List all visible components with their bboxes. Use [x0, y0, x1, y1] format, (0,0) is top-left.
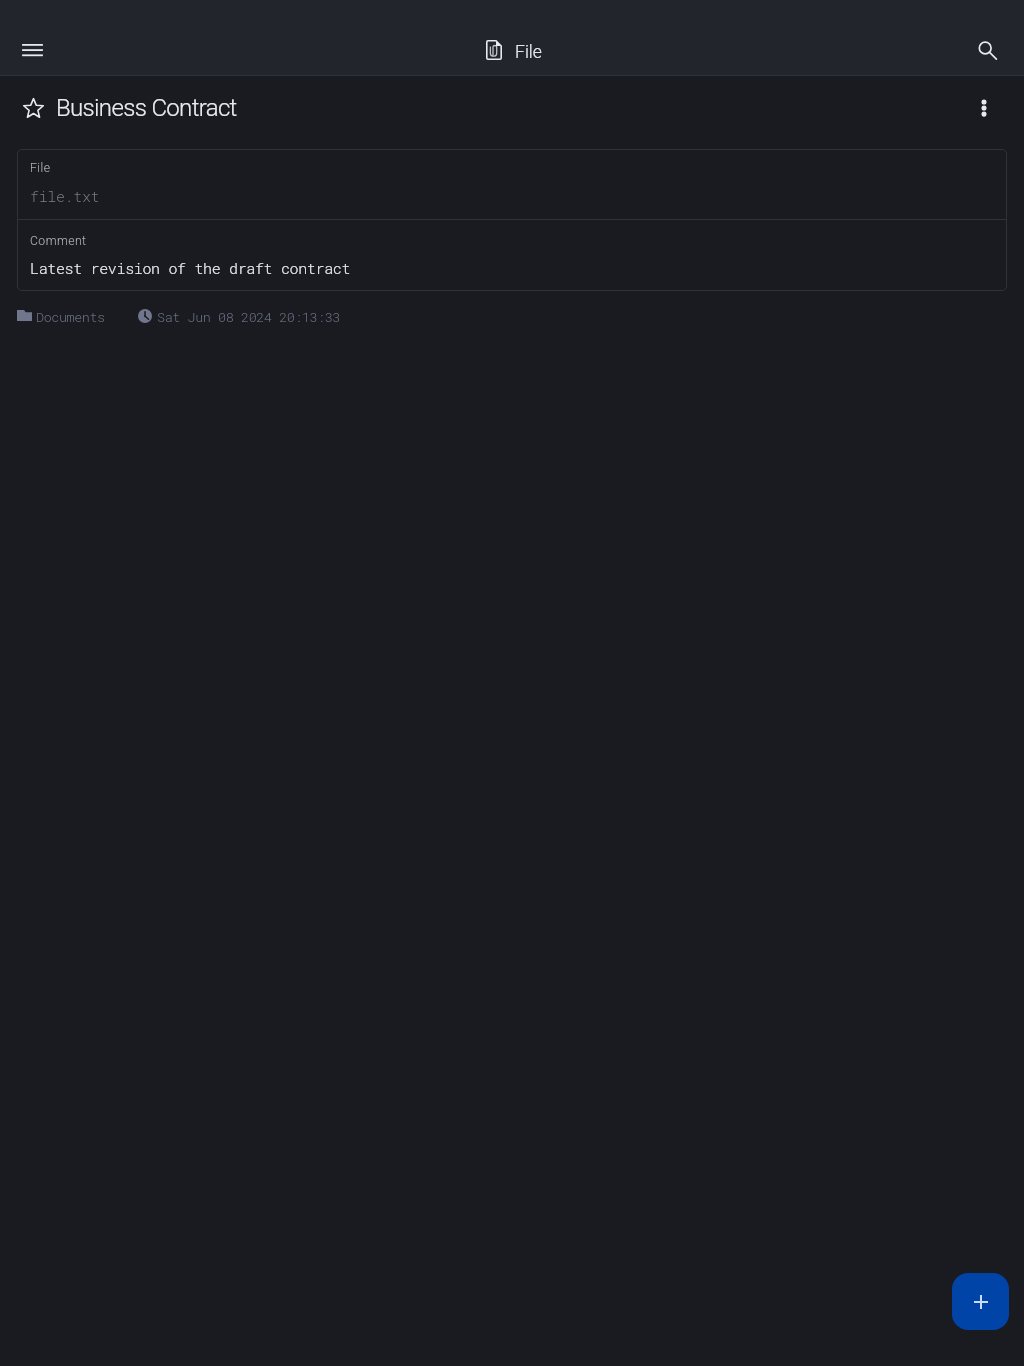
button[interactable]: Add to favourites	[10, 86, 237, 130]
staticText: Sat Jun 08 2024 20:13:33	[157, 308, 341, 326]
staticText: Comment	[30, 234, 87, 248]
button[interactable]: Comment	[17, 220, 1007, 291]
staticText: File	[515, 42, 542, 63]
other: Add to favourites	[10, 86, 56, 130]
button[interactable]: Open navigation menu	[12, 30, 52, 70]
staticText: Business Contract	[56, 94, 237, 122]
button[interactable]: File	[17, 149, 1007, 219]
button[interactable]: More options	[964, 82, 1004, 122]
button[interactable]: Create new file	[952, 1273, 1009, 1330]
staticText: Documents	[36, 308, 105, 326]
button[interactable]: Search	[977, 39, 999, 61]
staticText: file.txt	[30, 186, 100, 206]
staticText: Latest revision of the draft contract	[30, 258, 351, 278]
staticText: File	[30, 161, 51, 175]
